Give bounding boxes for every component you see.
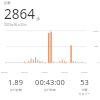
staticText: 24:00 [81,70,88,73]
staticText: 53 [80,77,89,87]
button[interactable]: 歩数 [0,0,100,27]
staticText: 1.89 [8,77,23,87]
staticText: 12:00 [41,70,48,73]
button[interactable]: Step activity chart [0,27,100,73]
staticText: 0 [97,60,99,63]
staticText: 00:43:00 [35,77,65,87]
staticText: 歩 [36,16,40,21]
staticText: 歩行距離 [10,88,22,92]
staticText: 2864 [4,5,35,23]
staticText: 歩数 [4,1,11,5]
button[interactable]: 1.89 [1,77,30,92]
staticText: 消費 カロリー [78,88,91,95]
staticText: 歩行時間 [44,88,56,92]
staticText: 500 [94,44,99,47]
button[interactable]: 53 [69,77,99,95]
staticText: 1,000 [92,29,99,32]
staticText: 2023年06月20日 [4,23,27,27]
button[interactable]: 00:43:00 [30,77,69,92]
staticText: 06:00 [21,70,28,73]
staticText: 00:00 [1,70,8,73]
staticText: 18:00 [61,70,68,73]
